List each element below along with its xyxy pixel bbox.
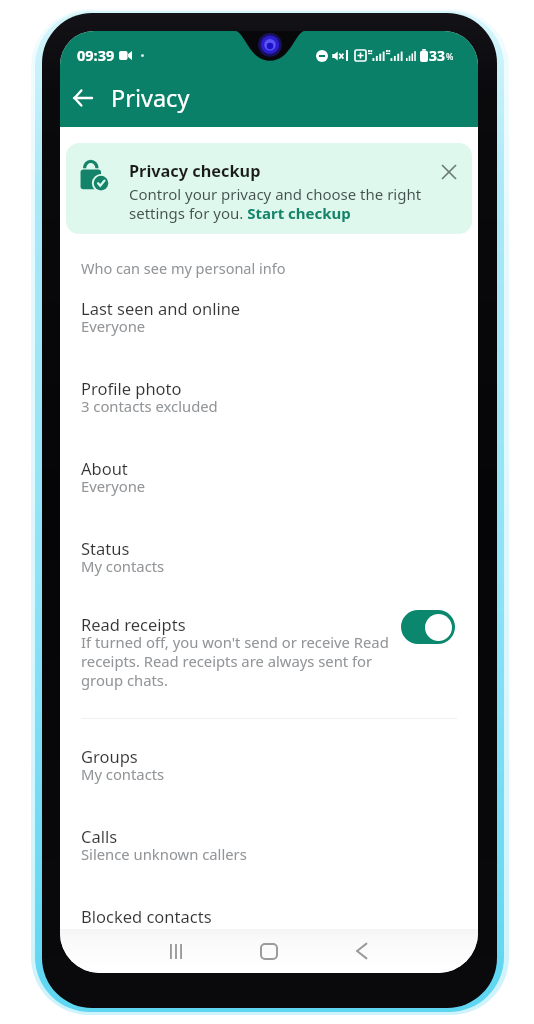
staticText: Privacy [111,82,190,114]
staticText: Read receipts [81,613,186,635]
button[interactable]: Profile photo [60,358,478,438]
staticText: % [446,50,454,62]
button[interactable]: Calls [60,806,478,886]
button[interactable]: Back [339,929,384,973]
staticText: Silence unknown callers [81,844,247,864]
staticText: If turned off, you won't send or receive… [81,632,395,690]
staticText: About [81,457,128,479]
button[interactable]: Status [60,518,478,598]
button[interactable]: Home [246,929,291,973]
button[interactable]: Groups [60,726,478,806]
staticText: Groups [81,745,138,767]
staticText: Control your privacy and choose the righ… [129,184,433,223]
staticText: Everyone [81,476,146,496]
button[interactable]: Blocked contacts [60,886,478,946]
button[interactable]: Last seen and online [60,278,478,358]
button[interactable]: Dismiss [437,160,461,184]
button[interactable]: Read receipts [60,598,478,707]
staticText: Profile photo [81,377,182,399]
button[interactable]: Back [62,79,102,116]
staticText: Everyone [81,316,146,336]
button[interactable]: Read receipts toggle [401,610,455,644]
button[interactable]: Recent apps [153,929,198,973]
staticText: 33 [429,46,446,65]
staticText: Who can see my personal info [81,258,286,278]
staticText: Calls [81,825,118,847]
staticText: Last seen and online [81,297,241,319]
staticText: Status [81,537,130,559]
staticText: My contacts [81,556,165,576]
button[interactable]: Privacy checkup [66,143,472,234]
staticText: 09:39 [77,45,115,65]
staticText: Blocked contacts [81,905,212,927]
staticText: Privacy checkup [129,160,261,182]
staticText: 3 contacts excluded [81,396,218,416]
staticText: My contacts [81,764,165,784]
button[interactable]: About [60,438,478,518]
